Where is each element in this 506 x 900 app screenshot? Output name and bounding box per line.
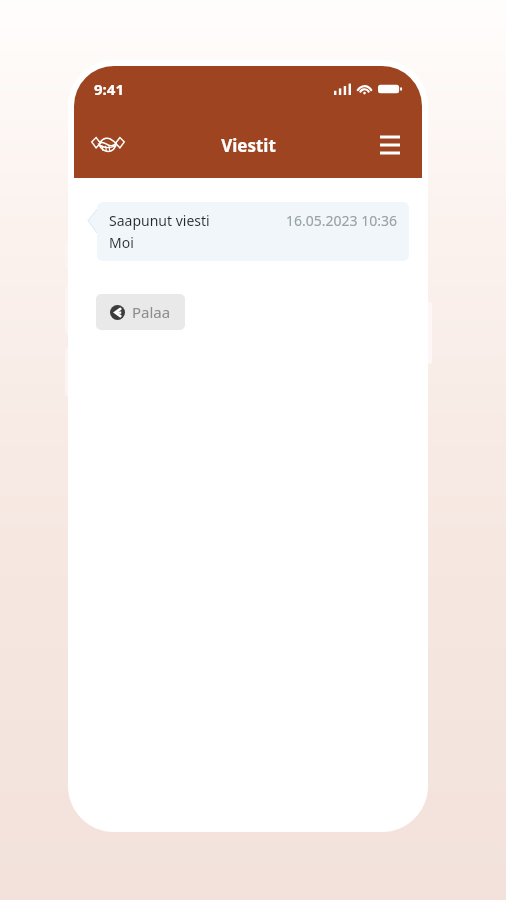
button[interactable]: Palaa <box>96 294 185 330</box>
staticText: Moi <box>109 233 134 252</box>
staticText: Viestit <box>221 134 276 157</box>
staticText: 16.05.2023 10:36 <box>286 211 397 230</box>
button[interactable]: Menu <box>370 125 410 165</box>
staticText: 9:41 <box>94 79 124 99</box>
button[interactable]: Saapunut viesti <box>97 202 409 261</box>
staticText: Palaa <box>132 302 171 322</box>
button[interactable]: Home <box>86 123 130 167</box>
staticText: Saapunut viesti <box>109 211 210 230</box>
